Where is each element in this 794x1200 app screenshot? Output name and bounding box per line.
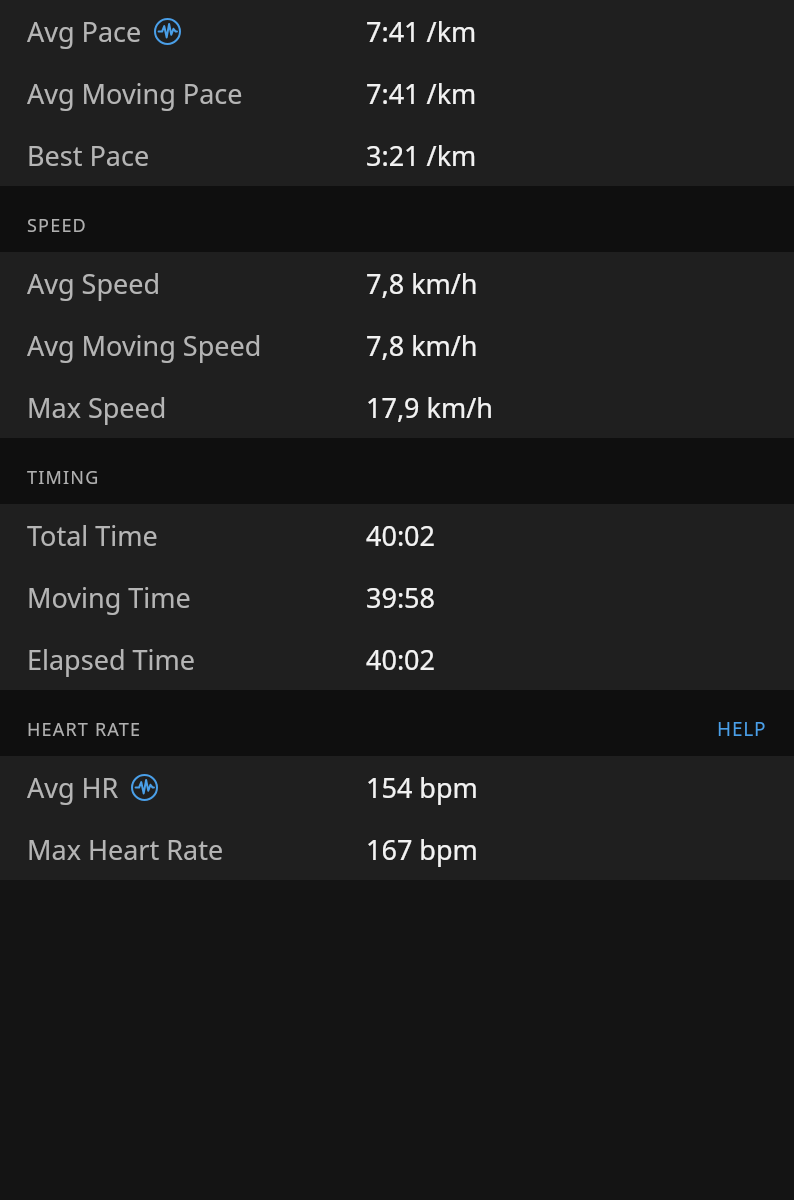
staticText: Max Heart Rate: [27, 831, 224, 868]
staticText: 40:02: [366, 641, 436, 678]
staticText: 39:58: [366, 579, 436, 616]
button[interactable]: Avg HR: [0, 756, 794, 818]
staticText: 7,8 km/h: [366, 265, 478, 302]
staticText: Avg HR: [27, 769, 119, 806]
staticText: 40:02: [366, 517, 436, 554]
staticText: Avg Speed: [27, 265, 161, 302]
staticText: 154 bpm: [366, 769, 478, 806]
staticText: SPEED: [27, 213, 87, 238]
other: Heart rate data: [131, 774, 158, 801]
button[interactable]: Avg Pace: [0, 0, 794, 62]
staticText: Avg Moving Speed: [27, 327, 262, 364]
staticText: Max Speed: [27, 389, 167, 426]
button[interactable]: Avg Moving Pace: [0, 62, 794, 124]
staticText: HEART RATE: [27, 717, 142, 742]
staticText: 167 bpm: [366, 831, 478, 868]
staticText: 7:41 /km: [366, 75, 477, 112]
button[interactable]: Max Speed: [0, 376, 794, 438]
staticText: 3:21 /km: [366, 137, 477, 174]
staticText: Avg Moving Pace: [27, 75, 243, 112]
staticText: 7,8 km/h: [366, 327, 478, 364]
button[interactable]: Avg Moving Speed: [0, 314, 794, 376]
button[interactable]: Moving Time: [0, 566, 794, 628]
staticText: Elapsed Time: [27, 641, 195, 678]
staticText: Best Pace: [27, 137, 150, 174]
staticText: 7:41 /km: [366, 13, 477, 50]
button[interactable]: Total Time: [0, 504, 794, 566]
staticText: TIMING: [27, 465, 100, 490]
staticText: 17,9 km/h: [366, 389, 493, 426]
button[interactable]: Best Pace: [0, 124, 794, 186]
button[interactable]: HELP: [717, 716, 794, 756]
staticText: Avg Pace: [27, 13, 142, 50]
button[interactable]: Elapsed Time: [0, 628, 794, 690]
other: Heart rate data: [154, 18, 181, 45]
button[interactable]: Avg Speed: [0, 252, 794, 314]
staticText: Moving Time: [27, 579, 191, 616]
staticText: HELP: [717, 716, 767, 742]
staticText: Total Time: [27, 517, 158, 554]
button[interactable]: Max Heart Rate: [0, 818, 794, 880]
